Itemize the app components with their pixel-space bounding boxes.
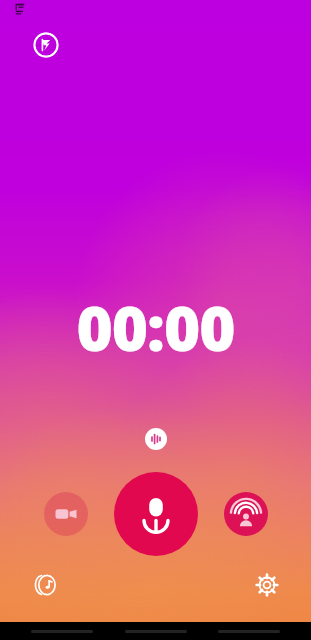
button[interactable]: Start recording — [114, 472, 198, 556]
button[interactable]: Settings — [252, 570, 282, 600]
button[interactable]: Live broadcast — [224, 492, 268, 536]
button[interactable]: Audio waveform — [145, 428, 167, 450]
button[interactable]: My recordings — [31, 570, 61, 600]
button[interactable]: Record video — [44, 492, 88, 536]
button[interactable]: Recording quality — [33, 32, 59, 58]
staticText: 00:00 — [76, 285, 235, 369]
